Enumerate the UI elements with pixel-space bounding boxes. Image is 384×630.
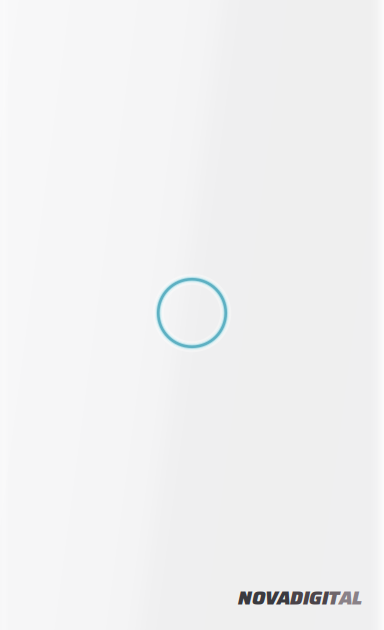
staticText: T — [328, 583, 339, 613]
staticText: AL — [339, 583, 362, 613]
button[interactable]: Touch switch — [144, 265, 240, 365]
staticText: NOVA — [238, 583, 290, 613]
staticText: DIGI — [290, 583, 328, 613]
